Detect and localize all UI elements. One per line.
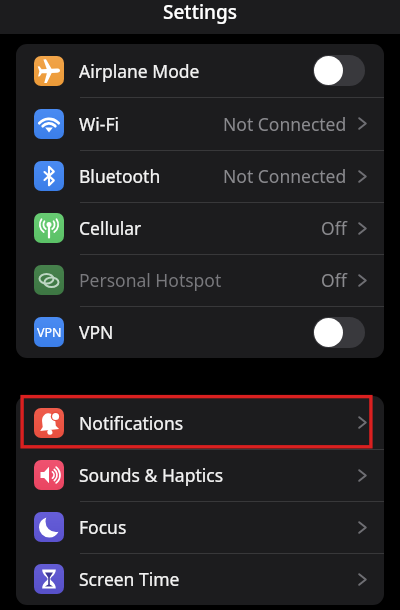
staticText: Screen Time bbox=[79, 567, 180, 591]
button[interactable]: Bluetooth bbox=[16, 150, 384, 202]
staticText: Not Connected bbox=[223, 112, 347, 136]
staticText: Off bbox=[321, 216, 347, 240]
button[interactable]: Toggle bbox=[313, 55, 365, 86]
staticText: Airplane Mode bbox=[79, 59, 200, 83]
staticText: Notifications bbox=[79, 411, 184, 435]
button[interactable]: Wi-Fi bbox=[16, 97, 384, 150]
staticText: VPN bbox=[37, 324, 62, 341]
button[interactable]: Sounds & Haptics bbox=[16, 449, 384, 501]
staticText: Cellular bbox=[79, 216, 142, 240]
button[interactable]: VPN bbox=[16, 306, 384, 358]
staticText: Settings bbox=[163, 0, 237, 25]
button[interactable]: Personal Hotspot bbox=[16, 254, 384, 306]
other: Highlighted item bbox=[0, 0, 400, 610]
staticText: VPN bbox=[79, 320, 114, 344]
staticText: Not Connected bbox=[223, 164, 347, 188]
button[interactable]: Notifications bbox=[16, 396, 384, 449]
button[interactable]: Toggle bbox=[313, 317, 365, 348]
staticText: Off bbox=[321, 268, 347, 292]
button[interactable]: Airplane Mode bbox=[16, 44, 384, 97]
staticText: Focus bbox=[79, 515, 127, 539]
staticText: Sounds & Haptics bbox=[79, 463, 224, 487]
staticText: Wi-Fi bbox=[79, 112, 120, 136]
button[interactable]: Focus bbox=[16, 501, 384, 553]
button[interactable]: Cellular bbox=[16, 202, 384, 254]
staticText: Personal Hotspot bbox=[79, 268, 222, 292]
staticText: Bluetooth bbox=[79, 164, 161, 188]
button[interactable]: Screen Time bbox=[16, 553, 384, 605]
